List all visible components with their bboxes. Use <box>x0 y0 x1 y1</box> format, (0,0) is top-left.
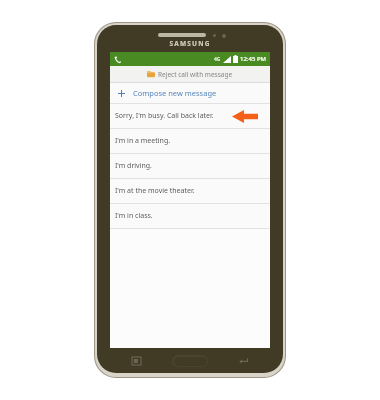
button[interactable]: I'm driving. <box>110 154 270 178</box>
staticText: I'm at the movie theater. <box>115 186 195 196</box>
button[interactable]: I'm in class. <box>110 204 270 228</box>
button[interactable]: I'm at the movie theater. <box>110 179 270 203</box>
button[interactable]: Compose new message <box>110 83 270 103</box>
staticText: Reject call with message <box>158 70 233 79</box>
staticText: Compose new message <box>133 88 217 98</box>
button[interactable]: Back <box>239 357 248 365</box>
staticText: 12:45 PM <box>240 55 267 63</box>
staticText: SAMSUNG <box>157 39 223 48</box>
button[interactable]: I'm in a meeting. <box>110 129 270 153</box>
staticText: I'm in a meeting. <box>115 136 171 146</box>
button[interactable]: Home <box>172 355 208 367</box>
staticText: I'm driving. <box>115 161 152 171</box>
button[interactable]: Reject call with message <box>110 66 270 82</box>
button[interactable]: Sorry, I'm busy. Call back later. <box>110 104 270 128</box>
staticText: 4G <box>214 56 221 63</box>
staticText: I'm in class. <box>115 211 153 221</box>
button[interactable]: Recents <box>132 357 141 365</box>
staticText: Sorry, I'm busy. Call back later. <box>115 111 214 121</box>
other: Pointer arrow <box>232 110 258 123</box>
